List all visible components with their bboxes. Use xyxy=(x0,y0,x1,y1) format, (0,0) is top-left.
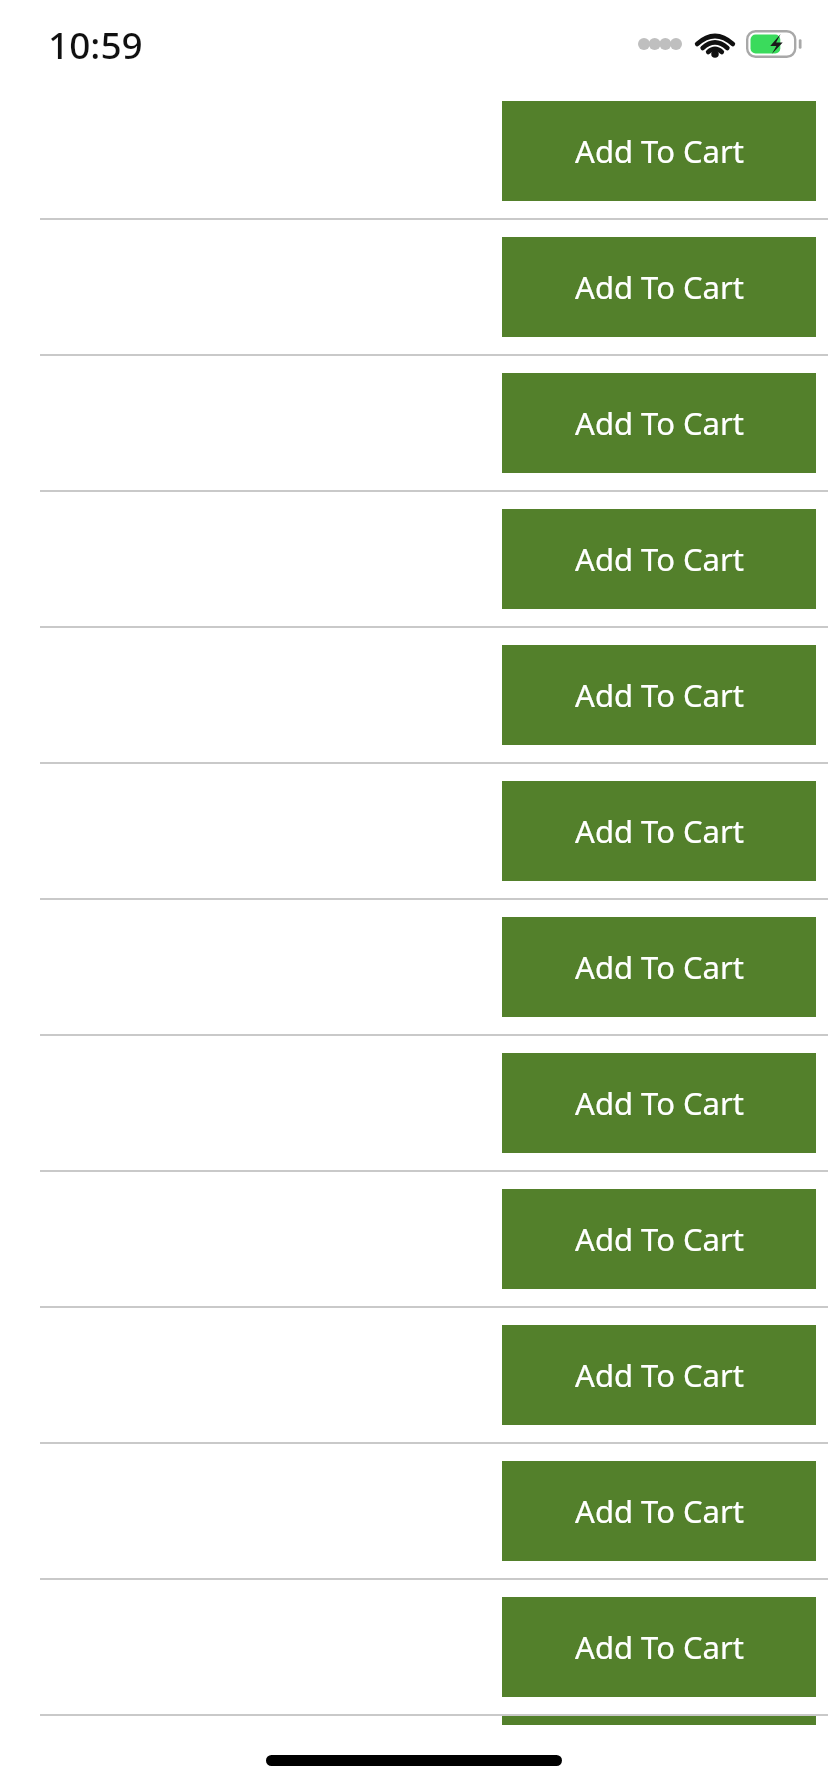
button[interactable]: Add To Cart xyxy=(502,781,816,881)
button[interactable]: Add To Cart xyxy=(502,237,816,337)
button[interactable]: Add To Cart xyxy=(502,645,816,745)
staticText: Add To Cart xyxy=(575,402,744,444)
staticText: Add To Cart xyxy=(575,810,744,852)
staticText: Add To Cart xyxy=(575,1490,744,1532)
staticText: Add To Cart xyxy=(575,538,744,580)
other: Battery charging xyxy=(746,30,802,58)
staticText: Add To Cart xyxy=(575,1218,744,1260)
other: Wi-Fi xyxy=(696,30,734,58)
other: Cellular signal xyxy=(638,38,682,50)
button[interactable]: Add To Cart xyxy=(502,1597,816,1697)
staticText: 10:59 xyxy=(48,19,143,69)
staticText: Add To Cart xyxy=(575,266,744,308)
button[interactable]: Add To Cart xyxy=(502,1325,816,1425)
button[interactable]: Add To Cart xyxy=(502,917,816,1017)
staticText: Add To Cart xyxy=(575,946,744,988)
button[interactable]: Add To Cart xyxy=(502,373,816,473)
button[interactable]: Add To Cart xyxy=(502,1189,816,1289)
button[interactable]: Add To Cart xyxy=(502,1053,816,1153)
button[interactable]: Add To Cart xyxy=(502,1461,816,1561)
button[interactable]: Add To Cart xyxy=(502,509,816,609)
staticText: Add To Cart xyxy=(575,1626,744,1668)
staticText: Add To Cart xyxy=(575,130,744,172)
staticText: Add To Cart xyxy=(575,1354,744,1396)
button[interactable]: Add To Cart xyxy=(502,101,816,201)
staticText: Add To Cart xyxy=(575,674,744,716)
staticText: Add To Cart xyxy=(575,1082,744,1124)
